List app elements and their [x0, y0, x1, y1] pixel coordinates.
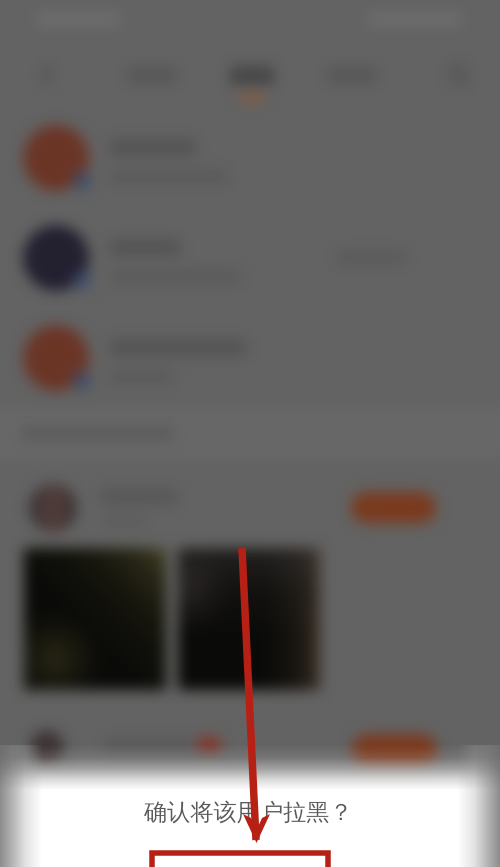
staticText: 确认将该用户拉黑？ [144, 798, 353, 827]
button[interactable] [202, 48, 302, 102]
button[interactable] [352, 734, 437, 765]
button[interactable] [0, 208, 500, 308]
button[interactable] [0, 108, 500, 208]
button[interactable] [351, 492, 436, 523]
button[interactable] [0, 308, 500, 408]
